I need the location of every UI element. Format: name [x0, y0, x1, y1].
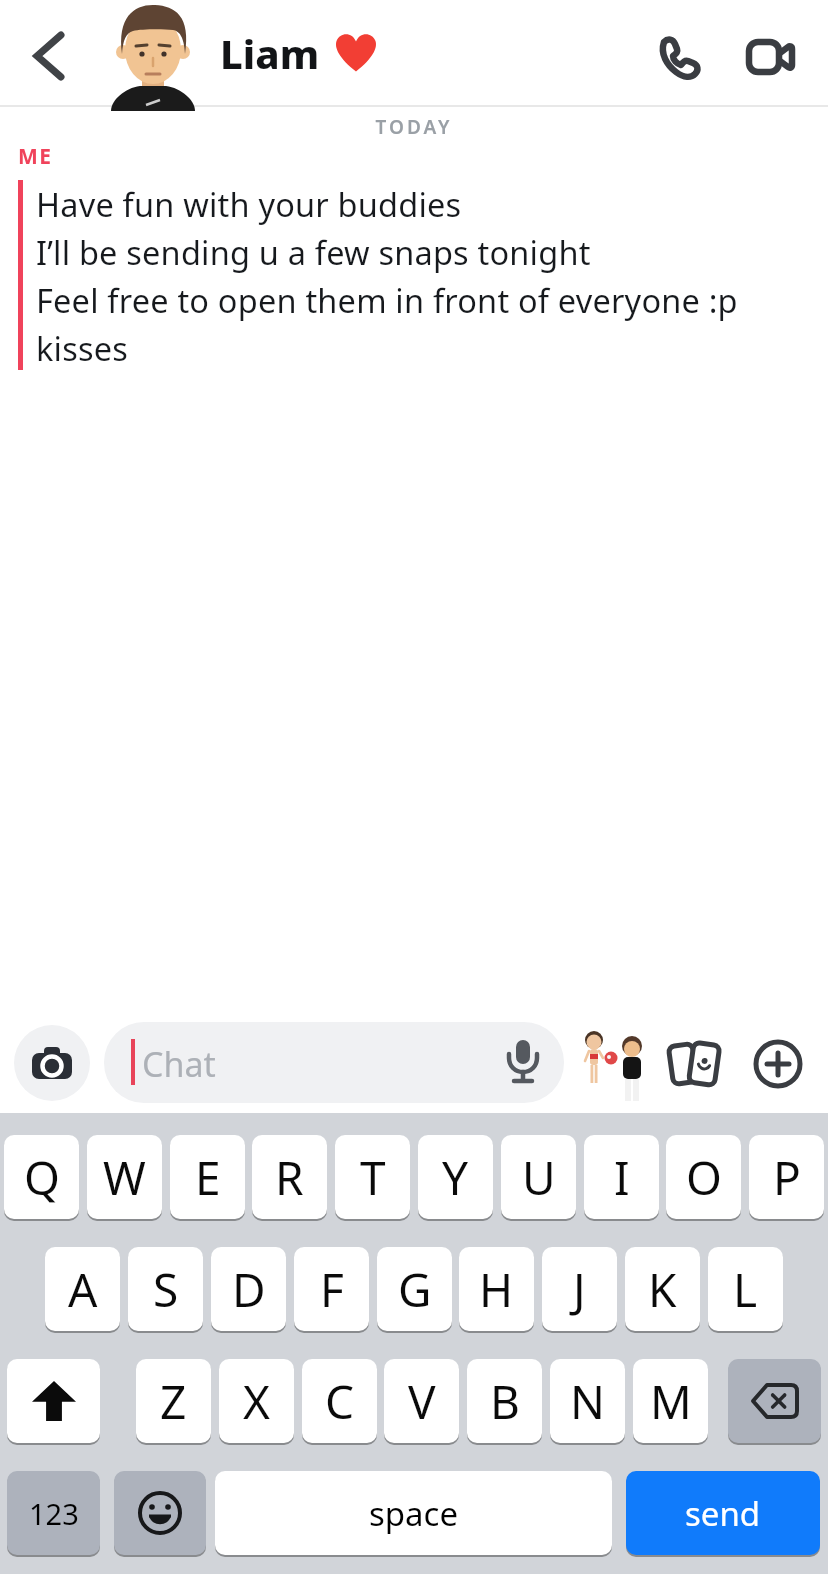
- button[interactable]: K: [625, 1247, 700, 1331]
- staticText: A: [68, 1258, 98, 1321]
- staticText: TODAY: [0, 114, 828, 140]
- button[interactable]: L: [708, 1247, 783, 1331]
- staticText: D: [232, 1258, 266, 1321]
- button[interactable]: U: [501, 1135, 576, 1219]
- button[interactable]: Liam: [220, 26, 378, 80]
- button[interactable]: [648, 28, 704, 84]
- staticText: I’ll be sending u a few snaps tonight: [36, 230, 591, 278]
- staticText: Feel free to open them in front of every…: [36, 278, 738, 326]
- staticText: I: [614, 1146, 630, 1209]
- button[interactable]: T: [335, 1135, 410, 1219]
- button[interactable]: W: [87, 1135, 162, 1219]
- staticText: L: [733, 1258, 758, 1321]
- button[interactable]: O: [666, 1135, 741, 1219]
- button[interactable]: [7, 1359, 100, 1443]
- button[interactable]: A: [45, 1247, 120, 1331]
- staticText: Have fun with your buddies: [36, 182, 462, 230]
- button[interactable]: Chat: [104, 1022, 564, 1103]
- staticText: P: [773, 1146, 801, 1209]
- button[interactable]: [728, 1359, 821, 1443]
- button[interactable]: [20, 28, 76, 84]
- button[interactable]: Z: [136, 1359, 211, 1443]
- button[interactable]: [114, 1471, 206, 1555]
- staticText: K: [648, 1258, 677, 1321]
- button[interactable]: V: [384, 1359, 459, 1443]
- button[interactable]: S: [128, 1247, 203, 1331]
- button[interactable]: [14, 1025, 90, 1101]
- button[interactable]: [580, 1030, 650, 1106]
- staticText: kisses: [36, 326, 128, 374]
- button[interactable]: G: [377, 1247, 452, 1331]
- staticText: H: [479, 1258, 514, 1321]
- button[interactable]: H: [459, 1247, 534, 1331]
- staticText: 123: [29, 1494, 79, 1533]
- staticText: J: [573, 1258, 586, 1321]
- staticText: X: [243, 1370, 270, 1433]
- button[interactable]: [742, 28, 800, 86]
- staticText: F: [320, 1258, 344, 1321]
- staticText: O: [686, 1146, 722, 1209]
- button[interactable]: [664, 1034, 726, 1096]
- button[interactable]: 123: [7, 1471, 100, 1555]
- button[interactable]: C: [302, 1359, 377, 1443]
- button[interactable]: B: [467, 1359, 542, 1443]
- staticText: E: [195, 1146, 221, 1209]
- staticText: Z: [160, 1370, 187, 1433]
- staticText: S: [153, 1258, 179, 1321]
- staticText: Y: [442, 1146, 469, 1209]
- button[interactable]: J: [542, 1247, 617, 1331]
- button[interactable]: Y: [418, 1135, 493, 1219]
- staticText: send: [685, 1491, 761, 1536]
- staticText: B: [490, 1370, 520, 1433]
- button[interactable]: send: [626, 1471, 820, 1555]
- button[interactable]: Q: [4, 1135, 79, 1219]
- button[interactable]: D: [211, 1247, 286, 1331]
- button[interactable]: E: [170, 1135, 245, 1219]
- staticText: U: [522, 1146, 556, 1209]
- staticText: C: [325, 1370, 355, 1433]
- button[interactable]: F: [294, 1247, 369, 1331]
- staticText: V: [408, 1370, 436, 1433]
- button[interactable]: N: [550, 1359, 625, 1443]
- staticText: R: [275, 1146, 304, 1209]
- staticText: W: [103, 1146, 146, 1209]
- staticText: N: [570, 1370, 605, 1433]
- staticText: ME: [18, 142, 53, 171]
- staticText: space: [369, 1491, 459, 1536]
- button[interactable]: P: [749, 1135, 824, 1219]
- staticText: Chat: [142, 1041, 216, 1087]
- button[interactable]: M: [633, 1359, 708, 1443]
- staticText: Q: [24, 1146, 60, 1209]
- button[interactable]: I: [584, 1135, 659, 1219]
- staticText: G: [398, 1258, 432, 1321]
- staticText: T: [360, 1146, 386, 1209]
- button[interactable]: space: [215, 1471, 612, 1555]
- staticText: Liam: [220, 26, 320, 80]
- button[interactable]: [750, 1036, 806, 1092]
- staticText: M: [650, 1370, 692, 1433]
- button[interactable]: R: [252, 1135, 327, 1219]
- button[interactable]: X: [219, 1359, 294, 1443]
